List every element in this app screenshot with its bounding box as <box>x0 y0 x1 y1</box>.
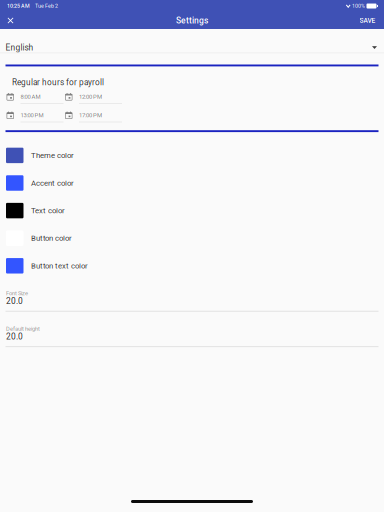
button[interactable]: Button text color <box>0 252 384 280</box>
staticText: 8:00 AM <box>20 93 40 100</box>
button[interactable]: 17:00 PM <box>65 111 122 122</box>
button[interactable]: 8:00 AM <box>6 93 63 104</box>
staticText: Button text color <box>31 261 88 270</box>
staticText: SAVE <box>359 17 375 24</box>
staticText: Button color <box>31 234 72 243</box>
staticText: Text color <box>31 206 65 215</box>
staticText: Accent color <box>31 178 74 188</box>
staticText: 100% <box>352 3 365 9</box>
button[interactable]: Font Size <box>0 289 384 312</box>
staticText: Settings <box>176 15 208 25</box>
button[interactable]: Text color <box>0 197 384 224</box>
button[interactable]: Accent color <box>0 169 384 197</box>
staticText: Tue Feb 2 <box>35 3 58 9</box>
button[interactable]: English <box>0 29 384 64</box>
button[interactable]: 12:00 PM <box>65 93 122 104</box>
staticText: 12:00 PM <box>79 93 102 100</box>
button[interactable]: Default height <box>0 325 384 347</box>
staticText: Theme color <box>31 151 74 160</box>
button[interactable]: 13:00 PM <box>6 111 63 122</box>
staticText: 10:25 AM <box>7 3 30 9</box>
button[interactable]: Theme color <box>0 142 384 169</box>
staticText: Font Size <box>6 290 28 297</box>
staticText: Default height <box>6 325 40 332</box>
staticText: 13:00 PM <box>20 112 43 119</box>
staticText: English <box>5 43 33 52</box>
staticText: 20.0 <box>6 296 23 306</box>
button[interactable]: SAVE <box>351 12 384 29</box>
staticText: 20.0 <box>6 332 23 342</box>
staticText: Regular hours for payroll <box>12 78 104 87</box>
staticText: 17:00 PM <box>79 112 102 119</box>
button[interactable]: Button color <box>0 224 384 252</box>
button[interactable]: Close <box>0 12 21 29</box>
